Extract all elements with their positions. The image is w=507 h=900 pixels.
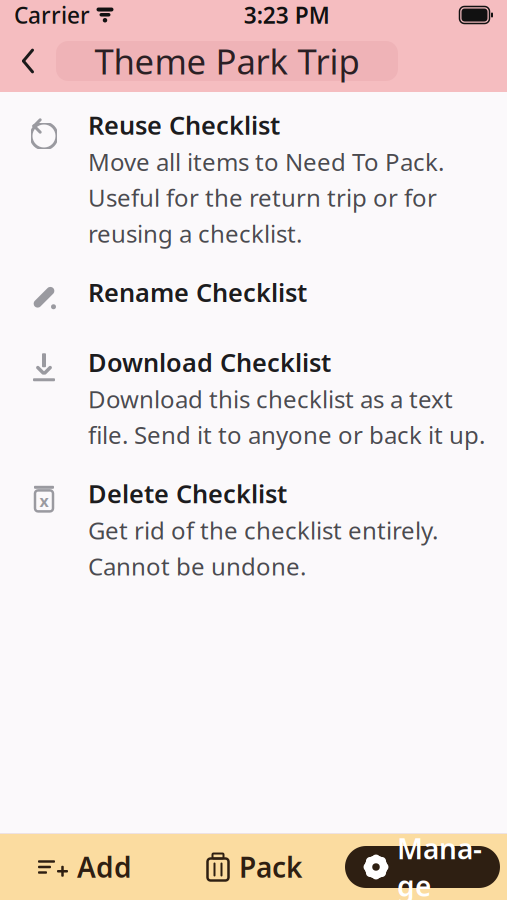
button[interactable]: Add xyxy=(0,834,169,900)
staticText: Get rid of the checklist entirely. Canno… xyxy=(88,514,438,582)
button[interactable]: Reuse Checklist xyxy=(0,92,507,259)
staticText: Rename Checklist xyxy=(88,275,307,309)
staticText: Pack xyxy=(239,848,302,886)
staticText: 3:23 PM xyxy=(244,0,330,30)
button[interactable]: Download Checklist xyxy=(0,329,507,461)
staticText: Download this checklist as a text file. … xyxy=(88,383,485,451)
staticText: Manage xyxy=(397,830,482,900)
staticText: Move all items to Need To Pack. Useful f… xyxy=(88,146,444,249)
staticText: Delete Checklist xyxy=(88,477,287,510)
staticText: x xyxy=(39,490,48,511)
staticText: Theme Park Trip xyxy=(94,38,359,84)
button[interactable]: Pack xyxy=(169,834,338,900)
button[interactable]: Rename Checklist xyxy=(0,259,507,329)
button[interactable]: Back xyxy=(0,30,56,92)
button[interactable]: x xyxy=(0,461,507,592)
staticText: Reuse Checklist xyxy=(88,108,280,142)
staticText: Add xyxy=(77,848,132,886)
button[interactable]: Manage xyxy=(338,834,507,900)
staticText: Carrier xyxy=(14,0,90,30)
staticText: Download Checklist xyxy=(88,345,331,379)
